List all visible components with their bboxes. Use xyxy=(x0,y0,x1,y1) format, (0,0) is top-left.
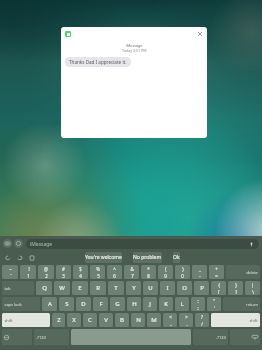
button[interactable]: Camera xyxy=(3,239,12,248)
staticText: No problem xyxy=(133,254,162,261)
staticText: ~ xyxy=(9,266,12,272)
staticText: ` xyxy=(10,273,12,278)
button[interactable]: A xyxy=(42,297,57,311)
button[interactable]: F xyxy=(93,297,108,311)
button[interactable]: tab xyxy=(2,281,34,295)
button[interactable]: < xyxy=(163,313,177,327)
button[interactable]: U xyxy=(143,281,158,295)
button[interactable]: You're welcome xyxy=(85,252,122,263)
staticText: 3 xyxy=(62,273,65,278)
staticText: T xyxy=(114,284,118,292)
staticText: delete xyxy=(246,270,258,275)
button[interactable]: + xyxy=(209,265,224,279)
button[interactable]: delete xyxy=(226,265,260,279)
button[interactable]: T xyxy=(108,281,124,295)
button[interactable]: Q xyxy=(36,281,52,295)
button[interactable]: I xyxy=(160,281,175,295)
button[interactable]: : xyxy=(191,297,205,311)
staticText: _ xyxy=(199,266,201,272)
button[interactable]: Emoji xyxy=(2,329,32,345)
button[interactable]: shift xyxy=(211,313,260,327)
button[interactable]: D xyxy=(76,297,91,311)
button[interactable]: P xyxy=(194,281,209,295)
staticText: X xyxy=(72,316,76,324)
staticText: + xyxy=(215,266,218,272)
staticText: I xyxy=(166,284,169,292)
staticText: G xyxy=(115,300,120,308)
button[interactable]: X xyxy=(67,313,81,327)
button[interactable]: ^ xyxy=(107,265,122,279)
button[interactable]: > xyxy=(179,313,193,327)
button[interactable]: return xyxy=(223,297,260,311)
staticText: - xyxy=(199,273,201,278)
button[interactable]: O xyxy=(177,281,192,295)
button[interactable]: No problem xyxy=(133,252,162,263)
button[interactable]: & xyxy=(124,265,139,279)
staticText: ] xyxy=(235,289,237,294)
button[interactable]: J xyxy=(143,297,157,311)
button[interactable]: @ xyxy=(38,265,54,279)
button[interactable]: Hide keyboard xyxy=(230,329,260,345)
button[interactable]: caps lock xyxy=(2,297,40,311)
button[interactable]: } xyxy=(228,281,243,295)
button[interactable]: Paste xyxy=(27,253,37,263)
button[interactable]: shift xyxy=(2,313,50,327)
button[interactable]: M xyxy=(147,313,161,327)
button[interactable]: Dictate xyxy=(248,241,255,248)
button[interactable]: # xyxy=(56,265,71,279)
button[interactable]: | xyxy=(245,281,260,295)
button[interactable]: _ xyxy=(192,265,207,279)
staticText: 4 xyxy=(79,273,82,278)
button[interactable]: .?123 xyxy=(193,329,228,345)
button[interactable]: " xyxy=(207,297,221,311)
staticText: , xyxy=(170,321,172,326)
button[interactable]: ) xyxy=(175,265,190,279)
button[interactable]: Messages xyxy=(65,31,71,37)
staticText: * xyxy=(147,266,150,272)
button[interactable]: ( xyxy=(158,265,173,279)
button[interactable]: Y xyxy=(126,281,141,295)
staticText: } xyxy=(235,282,237,288)
button[interactable]: C xyxy=(83,313,97,327)
button[interactable]: Close xyxy=(196,30,204,38)
staticText: 2 xyxy=(45,273,48,278)
button[interactable]: ? xyxy=(195,313,209,327)
staticText: 7 xyxy=(131,273,134,278)
button[interactable]: % xyxy=(90,265,105,279)
button[interactable]: H xyxy=(127,297,141,311)
staticText: B xyxy=(120,316,124,324)
button[interactable]: .?123 xyxy=(34,329,69,345)
button[interactable]: iMessage xyxy=(26,239,259,249)
staticText: < xyxy=(169,314,172,320)
button[interactable]: Thanks Dad I appreciate it. xyxy=(65,57,131,67)
button[interactable]: V xyxy=(99,313,113,327)
button[interactable]: E xyxy=(72,281,88,295)
staticText: $ xyxy=(79,266,82,272)
button[interactable]: { xyxy=(211,281,226,295)
button[interactable]: * xyxy=(141,265,156,279)
button[interactable]: G xyxy=(110,297,125,311)
button[interactable]: ! xyxy=(20,265,36,279)
button[interactable]: Undo xyxy=(3,253,13,263)
staticText: & xyxy=(130,266,134,272)
button[interactable]: Apps xyxy=(14,239,23,248)
button[interactable]: Ok xyxy=(173,252,180,263)
staticText: " xyxy=(213,298,215,304)
button[interactable]: ~ xyxy=(2,265,18,279)
button[interactable]: W xyxy=(54,281,70,295)
button[interactable]: R xyxy=(90,281,106,295)
button[interactable]: Redo xyxy=(15,253,25,263)
staticText: F xyxy=(99,300,103,308)
staticText: return xyxy=(246,302,258,307)
staticText: ( xyxy=(165,266,167,272)
staticText: caps lock xyxy=(4,302,22,307)
button[interactable]: L xyxy=(175,297,189,311)
button[interactable]: N xyxy=(131,313,145,327)
button[interactable]: K xyxy=(159,297,173,311)
button[interactable]: B xyxy=(115,313,129,327)
staticText: = xyxy=(215,273,218,278)
button[interactable]: $ xyxy=(73,265,88,279)
button[interactable]: S xyxy=(59,297,74,311)
button[interactable]: Z xyxy=(52,313,65,327)
